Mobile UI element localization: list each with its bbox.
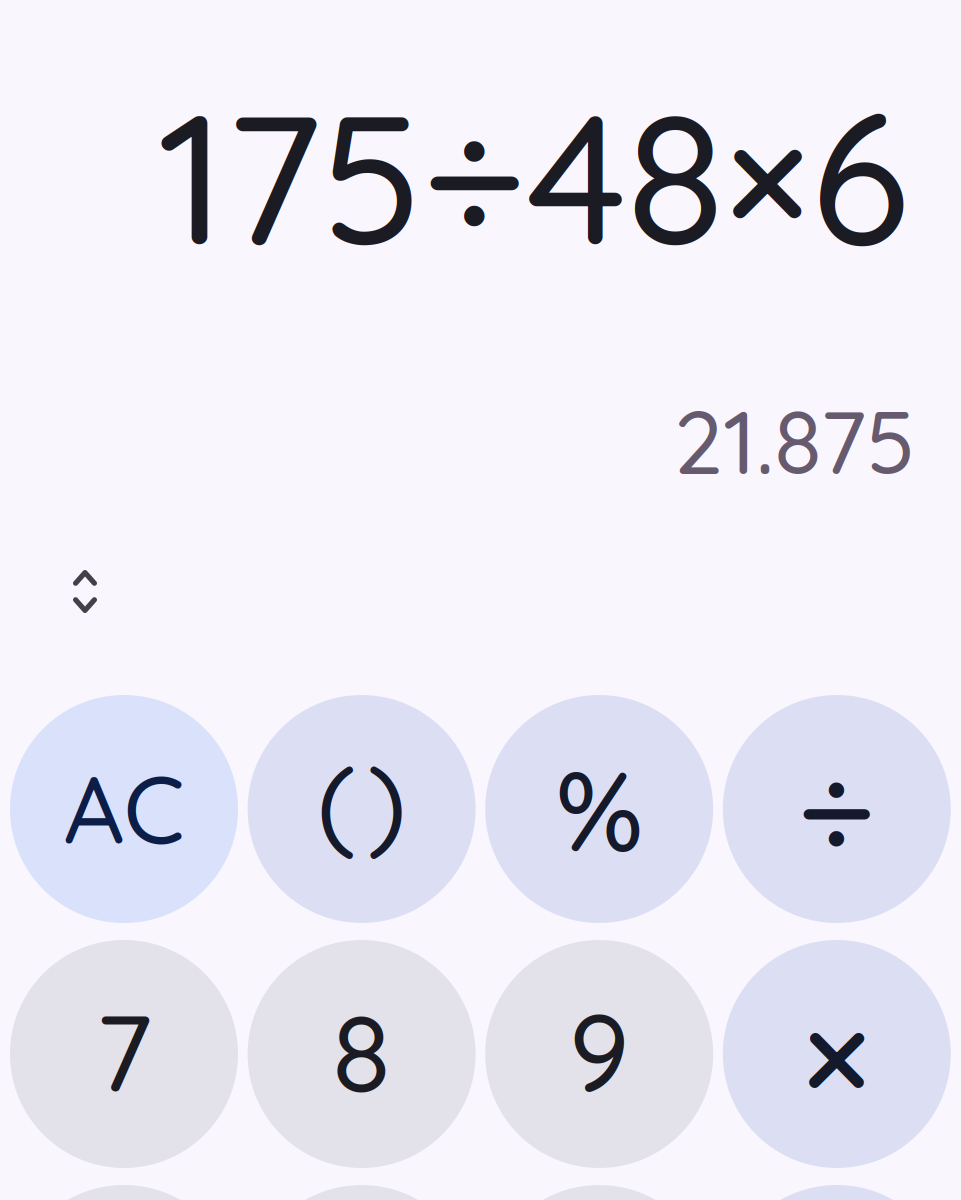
button[interactable]: 5	[248, 1185, 476, 1200]
staticText: 175÷48×6	[157, 62, 909, 290]
staticText: AC	[63, 749, 184, 867]
button[interactable]: Expand history	[73, 570, 97, 613]
button[interactable]: 7	[10, 940, 238, 1168]
button[interactable]: 4	[10, 1185, 238, 1200]
button[interactable]: %	[485, 695, 713, 923]
staticText: ÷	[797, 723, 877, 895]
button[interactable]: AC	[10, 695, 238, 923]
button[interactable]: ( )	[248, 695, 476, 923]
staticText: %	[555, 739, 643, 879]
button[interactable]: −	[723, 1185, 951, 1200]
staticText: 9	[569, 983, 630, 1118]
staticText: 7	[95, 983, 152, 1118]
staticText: ×	[802, 962, 872, 1146]
button[interactable]: 6	[485, 1185, 713, 1200]
button[interactable]: 8	[248, 940, 476, 1168]
staticText: ( )	[317, 736, 406, 866]
button[interactable]: ×	[723, 940, 951, 1168]
button[interactable]: ÷	[723, 695, 951, 923]
staticText: 21.875	[674, 386, 915, 496]
staticText: 8	[332, 983, 391, 1118]
button[interactable]: 9	[485, 940, 713, 1168]
